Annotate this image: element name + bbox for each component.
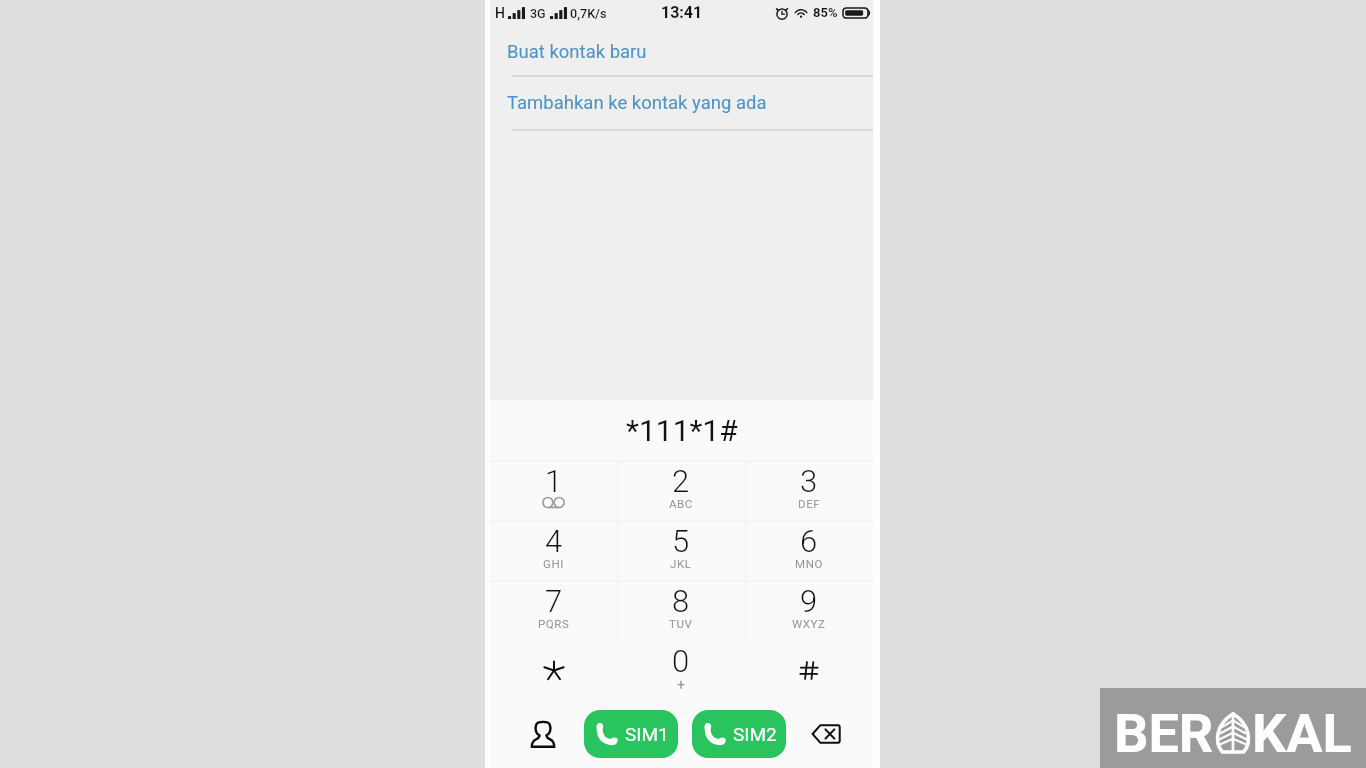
staticText: DEF xyxy=(798,497,821,510)
staticText: H xyxy=(495,5,505,21)
staticText: 3 xyxy=(800,463,818,499)
staticText: KAL xyxy=(1252,702,1352,765)
button[interactable]: 1 xyxy=(490,460,617,520)
staticText: 8 xyxy=(672,583,690,619)
button[interactable]: Tambahkan ke kontak yang ada xyxy=(490,77,873,129)
staticText: MNO xyxy=(795,557,823,570)
button[interactable]: 4 xyxy=(490,520,617,580)
staticText: BER xyxy=(1114,702,1214,765)
staticText: 1 xyxy=(545,463,563,499)
button[interactable]: Backspace xyxy=(803,700,849,768)
button[interactable]: SIM1 xyxy=(584,710,678,758)
staticText: *111*1# xyxy=(626,413,738,448)
staticText: 2 xyxy=(672,463,690,499)
staticText: 3G xyxy=(530,6,546,21)
staticText: WXYZ xyxy=(792,617,826,630)
staticText: GHI xyxy=(543,557,564,570)
button[interactable]: Buat kontak baru xyxy=(490,25,873,75)
staticText: 5 xyxy=(672,523,690,559)
staticText: Tambahkan ke kontak yang ada xyxy=(507,92,767,114)
button[interactable]: SIM2 xyxy=(692,710,786,758)
button[interactable]: 6 xyxy=(745,520,873,580)
staticText: 9 xyxy=(800,583,818,619)
button[interactable]: 9 xyxy=(745,580,873,640)
staticText: + xyxy=(677,677,686,693)
staticText: JKL xyxy=(670,557,692,570)
staticText: 85% xyxy=(813,5,838,20)
staticText: 7 xyxy=(545,583,563,619)
staticText: 4 xyxy=(545,523,563,559)
staticText: PQRS xyxy=(538,617,570,630)
button[interactable]: 2 xyxy=(617,460,745,520)
button[interactable]: 5 xyxy=(617,520,745,580)
staticText: SIM2 xyxy=(733,723,777,745)
button[interactable]: Contacts xyxy=(520,700,566,768)
button[interactable]: 7 xyxy=(490,580,617,640)
button[interactable]: 0 xyxy=(617,640,745,700)
staticText: 0,7K/s xyxy=(570,6,607,21)
button[interactable] xyxy=(745,640,873,700)
staticText: 6 xyxy=(800,523,818,559)
staticText: 13:41 xyxy=(661,3,703,22)
button[interactable] xyxy=(490,640,617,700)
button[interactable]: 8 xyxy=(617,580,745,640)
staticText: SIM1 xyxy=(625,723,669,745)
staticText: TUV xyxy=(669,617,693,630)
staticText: Buat kontak baru xyxy=(507,41,647,63)
staticText: ABC xyxy=(669,497,693,510)
button[interactable]: 3 xyxy=(745,460,873,520)
staticText: 0 xyxy=(672,643,690,679)
